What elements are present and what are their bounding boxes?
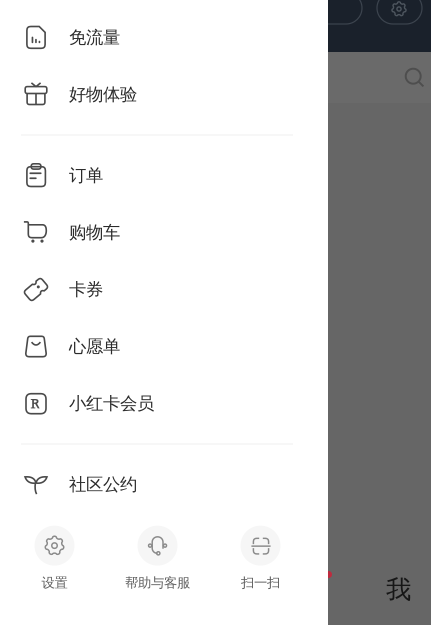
staticText: 帮助与客服 xyxy=(125,575,190,591)
button[interactable]: 心愿单 xyxy=(0,318,328,375)
staticText: 订单 xyxy=(69,165,103,186)
staticText: 设置 xyxy=(41,575,67,591)
staticText: 免流量 xyxy=(69,27,120,48)
staticText: 购物车 xyxy=(69,222,120,243)
button[interactable]: 免流量 xyxy=(0,9,328,66)
staticText: 社区公约 xyxy=(69,474,137,495)
button[interactable]: 卡券 xyxy=(0,261,328,318)
button[interactable]: 帮助与客服 xyxy=(106,526,209,591)
staticText: 心愿单 xyxy=(69,336,120,357)
button[interactable]: 扫一扫 xyxy=(209,526,312,591)
staticText: 我 xyxy=(386,574,411,605)
button[interactable]: 好物体验 xyxy=(0,66,328,123)
staticText: 卡券 xyxy=(69,279,103,300)
button[interactable]: 社区公约 xyxy=(0,456,328,513)
staticText: 扫一扫 xyxy=(241,575,280,591)
button[interactable]: 小红卡会员 xyxy=(0,375,328,432)
button[interactable]: 设置 xyxy=(3,526,106,591)
staticText: 好物体验 xyxy=(69,84,137,105)
staticText: 小红卡会员 xyxy=(69,393,154,414)
button[interactable]: 订单 xyxy=(0,147,328,204)
button[interactable]: 购物车 xyxy=(0,204,328,261)
